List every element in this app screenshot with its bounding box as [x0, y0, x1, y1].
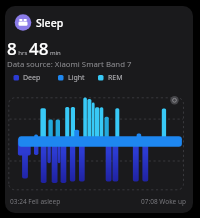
- staticText: Data source: Xiaomi Smart Band 7: [7, 59, 132, 70]
- staticText: Sleep: [36, 16, 64, 30]
- staticText: Light: [68, 73, 85, 83]
- button[interactable]: Sleep: [5, 6, 193, 213]
- staticText: REM: [108, 73, 123, 83]
- staticText: 8 hrs 48 min: [7, 37, 61, 60]
- staticText: 07:08 Woke up: [141, 197, 186, 206]
- staticText: 03:24 Fell asleep: [10, 197, 61, 206]
- staticText: Deep: [23, 73, 41, 83]
